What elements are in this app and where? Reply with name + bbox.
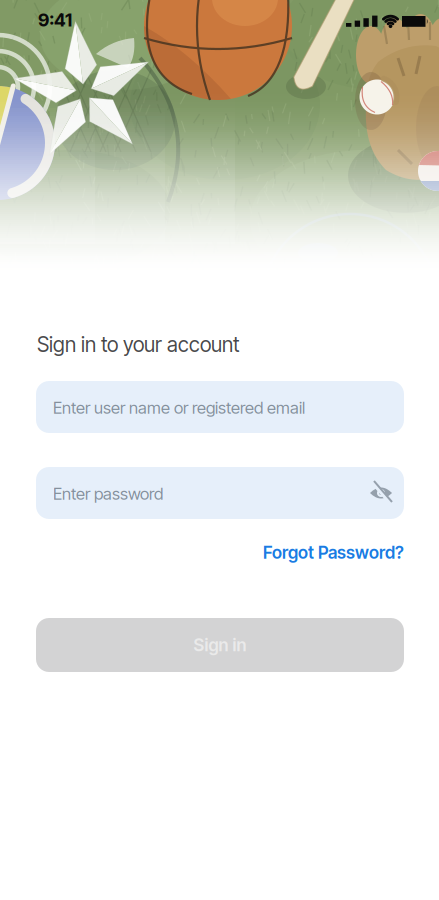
staticText: Sign in to your account xyxy=(37,332,240,357)
staticText: 9:41 xyxy=(38,9,72,31)
staticText: Sign in xyxy=(193,634,246,655)
button[interactable]: Enter user name or registered email xyxy=(36,381,404,433)
staticText: Enter user name or registered email xyxy=(53,397,305,418)
staticText: Forgot Password? xyxy=(263,542,404,563)
button[interactable]: Enter password xyxy=(36,467,439,900)
button[interactable]: Forgot Password? xyxy=(263,542,404,563)
button[interactable]: Sign in xyxy=(36,618,404,672)
staticText: Enter password xyxy=(53,483,163,504)
